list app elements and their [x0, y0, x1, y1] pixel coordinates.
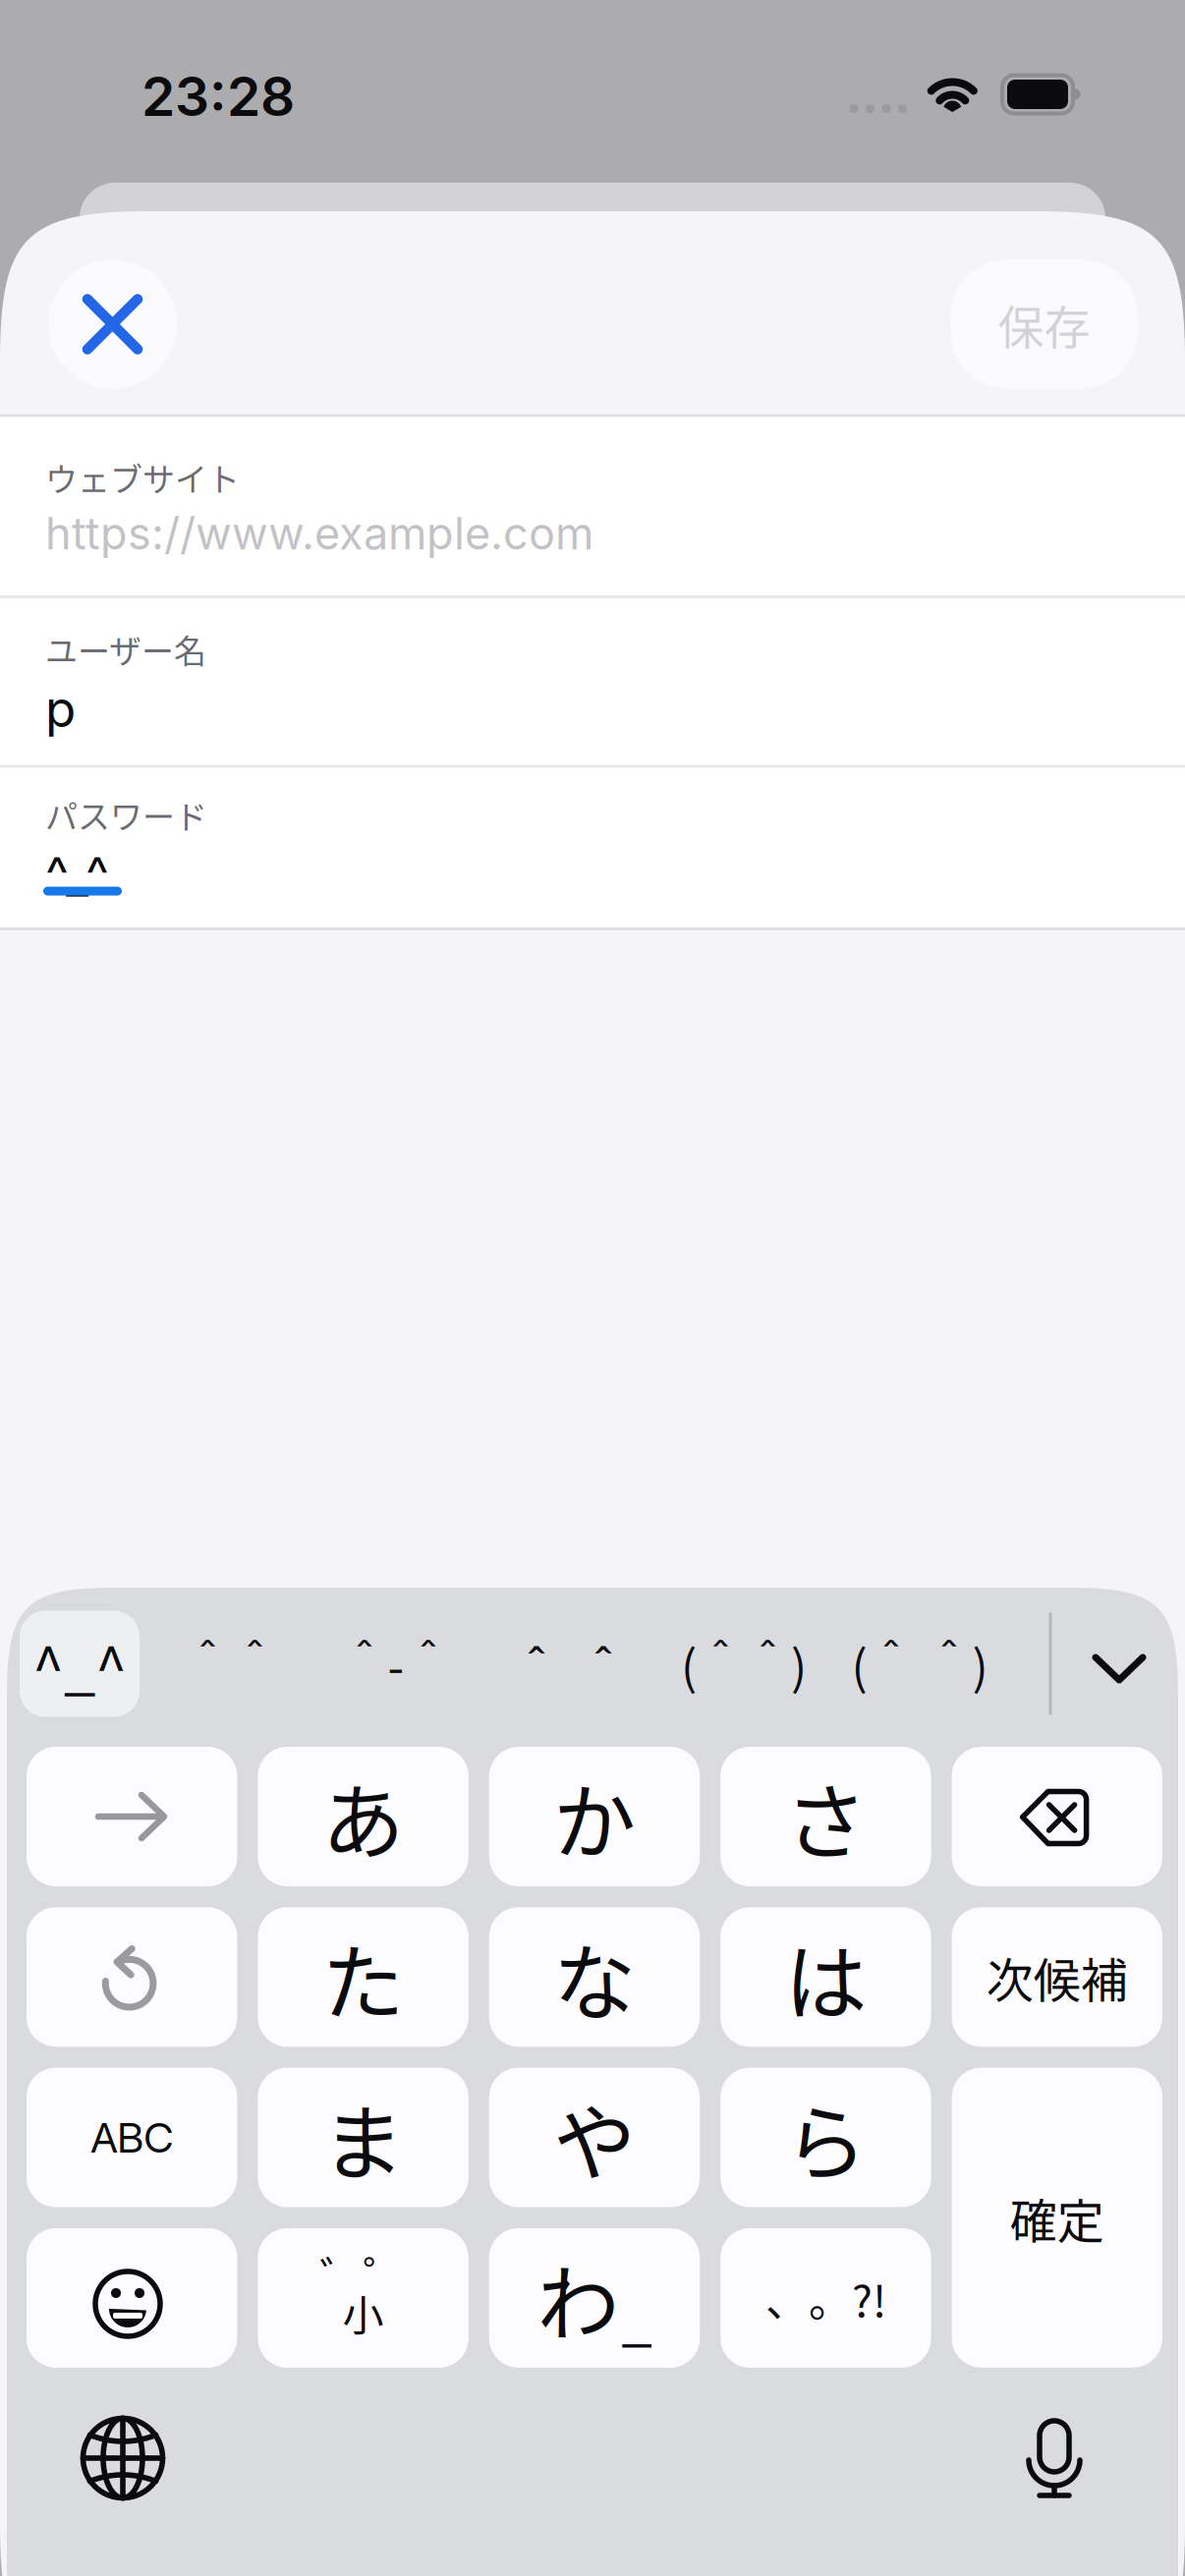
- staticText: 確定: [1010, 2184, 1104, 2252]
- staticText: 、。?!: [765, 2267, 886, 2329]
- button[interactable]: 次候補: [952, 1907, 1162, 2047]
- button[interactable]: た: [258, 1907, 468, 2047]
- staticText: (＾＾): [681, 1630, 807, 1698]
- button[interactable]: ウェブサイト: [0, 418, 1185, 596]
- button[interactable]: 、。?!: [720, 2228, 931, 2368]
- staticText: た: [322, 1917, 404, 2037]
- staticText: ^_^: [32, 1623, 127, 1705]
- staticText: 23:28: [141, 64, 295, 129]
- staticText: ˆ ˆ: [527, 1632, 613, 1696]
- button[interactable]: (＾ ＾): [802, 1611, 1038, 1717]
- button[interactable]: [48, 260, 177, 389]
- staticText: https://www.example.com: [45, 507, 593, 560]
- button[interactable]: [74, 2409, 172, 2507]
- button[interactable]: [1075, 1623, 1163, 1711]
- staticText: ＾-＾: [340, 1630, 451, 1698]
- button[interactable]: あ: [258, 1747, 468, 1886]
- staticText: p: [45, 678, 76, 739]
- button[interactable]: [27, 1747, 237, 1886]
- button[interactable]: ＾-＾: [278, 1611, 514, 1717]
- button[interactable]: わ: [489, 2228, 700, 2368]
- button[interactable]: な: [489, 1907, 700, 2047]
- button[interactable]: や: [489, 2068, 700, 2207]
- button[interactable]: ユーザー名: [0, 598, 1185, 766]
- button[interactable]: ま: [258, 2068, 468, 2207]
- staticText: ま: [322, 2078, 404, 2197]
- button[interactable]: 確定: [952, 2068, 1162, 2368]
- staticText: な: [553, 1917, 636, 2037]
- button[interactable]: パスワード: [0, 767, 1185, 928]
- staticText: や: [553, 2078, 636, 2197]
- button[interactable]: (＾＾): [626, 1611, 862, 1717]
- staticText: 小: [343, 2283, 384, 2343]
- button[interactable]: ら: [720, 2068, 931, 2207]
- button[interactable]: ^_^: [20, 1611, 140, 1717]
- button[interactable]: ˆ ˆ: [452, 1611, 688, 1717]
- button[interactable]: [27, 2228, 237, 2368]
- staticText: か: [553, 1757, 636, 1876]
- staticText: ABC: [91, 2112, 173, 2162]
- staticText: (＾ ＾): [851, 1630, 988, 1698]
- staticText: 次候補: [986, 1943, 1128, 2011]
- button[interactable]: か: [489, 1747, 700, 1886]
- staticText: わ: [537, 2238, 620, 2358]
- staticText: ^_^: [45, 844, 109, 905]
- staticText: _: [621, 2276, 652, 2356]
- staticText: ユーザー名: [45, 626, 206, 673]
- staticText: ＾＾: [184, 1630, 278, 1698]
- button[interactable]: ABC: [27, 2068, 237, 2207]
- staticText: さ: [784, 1757, 867, 1876]
- staticText: パスワード: [45, 791, 207, 838]
- staticText: ら: [784, 2078, 867, 2197]
- staticText: は: [784, 1917, 867, 2037]
- staticText: あ: [322, 1757, 404, 1876]
- staticText: 保存: [998, 291, 1090, 358]
- staticText: ゛゜: [320, 2243, 406, 2306]
- button[interactable]: さ: [720, 1747, 931, 1886]
- staticText: ウェブサイト: [45, 454, 240, 501]
- button[interactable]: [952, 1747, 1162, 1886]
- button[interactable]: は: [720, 1907, 931, 2047]
- button[interactable]: 保存: [950, 259, 1138, 389]
- button[interactable]: [27, 1907, 237, 2047]
- button[interactable]: [1005, 2409, 1103, 2507]
- button[interactable]: ＾＾: [113, 1611, 349, 1717]
- button[interactable]: ゛゜: [258, 2228, 468, 2368]
